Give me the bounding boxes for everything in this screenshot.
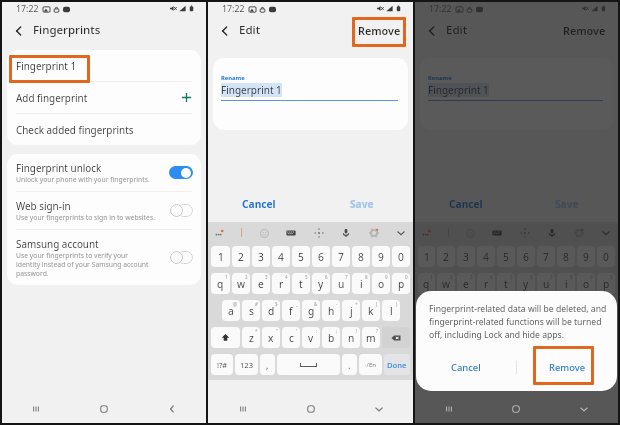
button[interactable]: Cancel bbox=[416, 352, 516, 382]
button[interactable]: n bbox=[342, 327, 360, 348]
button[interactable]: Fingerprint 1 bbox=[7, 50, 201, 81]
button[interactable]: 8 bbox=[352, 246, 370, 267]
button[interactable]: Save bbox=[310, 191, 413, 217]
button[interactable]: Remove bbox=[354, 20, 405, 41]
button[interactable]: z bbox=[447, 327, 465, 348]
button[interactable]: Home bbox=[482, 394, 550, 423]
button[interactable]: More options bbox=[214, 227, 226, 239]
button[interactable]: Shift bbox=[418, 327, 445, 348]
button[interactable]: 123 bbox=[442, 354, 464, 375]
button[interactable]: o bbox=[372, 273, 390, 294]
button[interactable]: a bbox=[427, 300, 445, 321]
button[interactable]: t bbox=[497, 273, 515, 294]
button[interactable]: Recents bbox=[415, 394, 482, 423]
button[interactable]: g bbox=[302, 300, 320, 321]
button[interactable]: f bbox=[282, 300, 300, 321]
button[interactable]: s bbox=[447, 300, 465, 321]
button[interactable]: j bbox=[342, 300, 360, 321]
button[interactable]: , bbox=[466, 354, 481, 375]
button[interactable]: k bbox=[567, 300, 585, 321]
button[interactable]: Check added fingerprints bbox=[7, 114, 201, 145]
button[interactable]: , bbox=[260, 354, 275, 375]
button[interactable]: Space bbox=[483, 354, 545, 375]
button[interactable]: 4 bbox=[477, 246, 495, 267]
button[interactable]: u bbox=[537, 273, 555, 294]
button[interactable]: a bbox=[222, 300, 240, 321]
button[interactable]: 7 bbox=[537, 246, 555, 267]
button[interactable]: ·/ bbox=[564, 354, 587, 375]
button[interactable]: y bbox=[312, 273, 330, 294]
button[interactable]: Backspace bbox=[382, 327, 410, 348]
button[interactable]: Collapse bbox=[600, 227, 612, 239]
button[interactable]: l bbox=[382, 300, 400, 321]
button[interactable]: w bbox=[437, 273, 455, 294]
button[interactable]: Web sign-in bbox=[7, 192, 201, 229]
button[interactable]: Hide keyboard bbox=[345, 394, 413, 423]
button[interactable]: z bbox=[242, 327, 260, 348]
button[interactable]: !?# bbox=[211, 354, 233, 375]
button[interactable]: i bbox=[352, 273, 370, 294]
button[interactable]: 3 bbox=[457, 246, 475, 267]
button[interactable]: b bbox=[322, 327, 340, 348]
button[interactable]: Samsung account bbox=[7, 230, 201, 285]
button[interactable]: Recents bbox=[208, 394, 277, 423]
button[interactable]: 6 bbox=[312, 246, 330, 267]
button[interactable]: Keyboard layout bbox=[285, 227, 297, 239]
button[interactable]: Done bbox=[384, 354, 410, 375]
button[interactable]: Backspace bbox=[587, 327, 615, 348]
button[interactable]: Back bbox=[216, 22, 233, 39]
button[interactable]: 1 bbox=[211, 246, 230, 267]
button[interactable]: Toggle on bbox=[169, 166, 193, 179]
button[interactable]: r bbox=[477, 273, 495, 294]
button[interactable]: w bbox=[232, 273, 250, 294]
button[interactable]: Remove bbox=[517, 352, 617, 382]
button[interactable]: q bbox=[418, 273, 435, 294]
button[interactable]: Add fingerprint bbox=[7, 82, 201, 113]
button[interactable]: Home bbox=[70, 394, 138, 423]
button[interactable]: f bbox=[487, 300, 505, 321]
button[interactable]: s bbox=[242, 300, 260, 321]
button[interactable]: Voice input bbox=[340, 227, 352, 239]
button[interactable]: l bbox=[587, 300, 605, 321]
button[interactable]: Recents bbox=[2, 394, 70, 423]
button[interactable]: Cancel bbox=[208, 191, 310, 217]
button[interactable]: g bbox=[507, 300, 525, 321]
button[interactable]: Toggle off bbox=[170, 251, 193, 264]
button[interactable]: Recents bbox=[415, 394, 482, 423]
button[interactable]: 2 bbox=[232, 246, 250, 267]
button[interactable]: 5 bbox=[497, 246, 515, 267]
button[interactable]: n bbox=[547, 327, 565, 348]
button[interactable]: Home bbox=[482, 394, 550, 423]
button[interactable]: 7 bbox=[332, 246, 350, 267]
button[interactable]: Keyboard layout bbox=[491, 227, 503, 239]
button[interactable]: Move keyboard bbox=[313, 227, 325, 239]
button[interactable]: Toggle off bbox=[170, 204, 193, 217]
button[interactable]: k bbox=[362, 300, 380, 321]
button[interactable]: 123 bbox=[235, 354, 258, 375]
button[interactable]: m bbox=[362, 327, 380, 348]
button[interactable]: Done bbox=[589, 354, 615, 375]
button[interactable]: Back bbox=[10, 22, 27, 39]
button[interactable]: 1 bbox=[418, 246, 435, 267]
button[interactable]: Fingerprint unlock bbox=[7, 154, 201, 191]
button[interactable]: 3 bbox=[252, 246, 270, 267]
button[interactable]: Hide keyboard bbox=[550, 394, 618, 423]
button[interactable]: Stickers bbox=[258, 227, 270, 239]
button[interactable]: h bbox=[527, 300, 545, 321]
button[interactable]: d bbox=[262, 300, 280, 321]
button[interactable]: d bbox=[467, 300, 485, 321]
button[interactable]: Shift bbox=[211, 327, 240, 348]
button[interactable]: More options bbox=[421, 227, 433, 239]
button[interactable]: x bbox=[262, 327, 280, 348]
button[interactable]: i bbox=[557, 273, 575, 294]
button[interactable]: 6 bbox=[517, 246, 535, 267]
button[interactable]: 0 bbox=[392, 246, 410, 267]
button[interactable]: v bbox=[302, 327, 320, 348]
button[interactable]: Home bbox=[277, 394, 345, 423]
button[interactable]: Space bbox=[277, 354, 340, 375]
button[interactable]: c bbox=[487, 327, 505, 348]
button[interactable]: e bbox=[457, 273, 475, 294]
button[interactable]: Back bbox=[423, 22, 440, 39]
